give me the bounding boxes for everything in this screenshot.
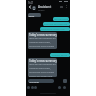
staticText: Today's news summary	[29, 33, 57, 36]
button[interactable]: Gallery	[26, 85, 30, 89]
staticText: Here are the headlines for today,	[29, 63, 57, 66]
button[interactable]: Send	[63, 79, 67, 83]
button[interactable]: Camera	[30, 85, 34, 89]
button[interactable]: Summarise today's top stories	[40, 27, 70, 31]
staticText: Tell me more	[54, 18, 68, 21]
staticText: Thanks, go on	[52, 54, 68, 57]
button[interactable]: Today's news summary	[28, 58, 57, 77]
button[interactable]: Today's news summary	[28, 32, 57, 49]
button[interactable]: Voice message	[62, 85, 66, 89]
staticText: covering world news, markets and	[29, 41, 57, 44]
staticText: Summarise today's top stories	[40, 28, 70, 31]
staticText: online	[38, 9, 45, 11]
button[interactable]: Good morning	[28, 13, 41, 17]
button[interactable]: Back	[27, 4, 33, 10]
button[interactable]: Emoji	[57, 85, 61, 89]
staticText: Here are the headlines for today,	[29, 37, 57, 40]
button[interactable]: What can you help me with?	[43, 22, 70, 26]
button[interactable]: More options	[64, 5, 68, 9]
button[interactable]: Thanks, go on	[50, 53, 70, 57]
button[interactable]: Attach file	[33, 85, 37, 89]
staticText: Good morning	[28, 14, 41, 17]
button[interactable]: Message	[28, 79, 54, 83]
staticText: around the globe right now today.	[29, 75, 57, 77]
staticText: Assistant	[38, 5, 52, 9]
staticText: Message	[29, 80, 39, 83]
staticText: technology from trusted sources	[29, 45, 57, 48]
staticText: covering world news, markets and	[29, 67, 57, 70]
staticText: technology from trusted sources	[29, 71, 57, 74]
staticText: Today's news summary	[29, 59, 57, 62]
staticText: 9:41	[28, 1, 34, 5]
button[interactable]: Assistant	[32, 5, 52, 11]
button[interactable]: Tell me more	[53, 17, 69, 21]
button[interactable]: Video call	[59, 5, 63, 9]
staticText: What can you help me with?	[43, 23, 70, 26]
